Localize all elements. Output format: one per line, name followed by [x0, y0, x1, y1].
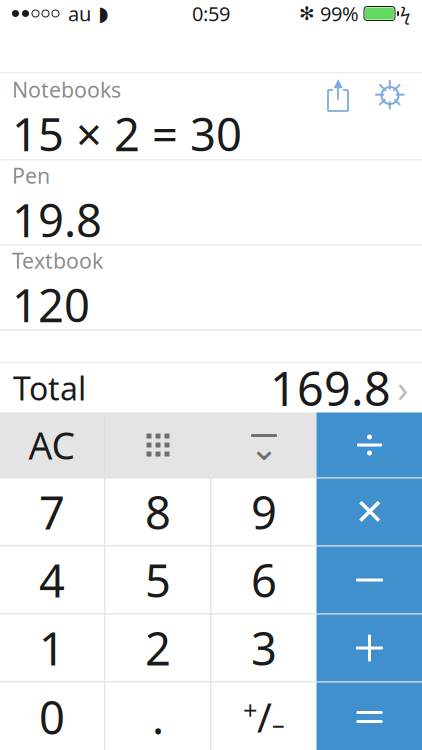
button[interactable]: Share [316, 73, 360, 117]
staticText: Total [13, 367, 86, 409]
staticText: ϟ [400, 1, 410, 26]
staticText: 2 [145, 618, 171, 678]
button[interactable]: Total [0, 363, 422, 412]
button[interactable]: Multiply [316, 478, 422, 545]
staticText: 1 [39, 618, 65, 678]
button[interactable]: Equals [316, 682, 422, 750]
staticText: 4 [39, 550, 65, 610]
staticText: 9 [251, 482, 277, 542]
button[interactable]: AC [0, 412, 104, 477]
staticText: + [243, 693, 257, 727]
button[interactable]: Textbook [0, 245, 422, 329]
staticText: ▲ [333, 76, 342, 89]
button[interactable]: 7 [0, 478, 104, 545]
button[interactable]: Plus minus [211, 682, 316, 750]
staticText: ✻ [299, 3, 315, 24]
button[interactable]: Notebooks [0, 73, 422, 159]
button[interactable]: 8 [105, 478, 210, 545]
staticText: 7 [39, 482, 65, 542]
staticText: 169.8 [270, 357, 391, 419]
button[interactable]: Subtract [316, 546, 422, 613]
staticText: – [272, 707, 285, 741]
staticText: 6 [251, 550, 277, 610]
staticText: . [152, 687, 164, 747]
button[interactable]: 1 [0, 614, 104, 681]
staticText: 0 [39, 687, 65, 747]
button[interactable]: 4 [0, 546, 104, 613]
staticText: 5 [145, 550, 171, 610]
button[interactable]: 3 [211, 614, 316, 681]
button[interactable]: Hide keyboard [211, 412, 316, 477]
button[interactable]: Keypad layout [105, 412, 210, 477]
button[interactable]: Divide [316, 412, 422, 477]
staticText: 120 [12, 275, 90, 335]
staticText: Notebooks [12, 75, 121, 103]
staticText: 8 [145, 482, 171, 542]
staticText: 99% [320, 0, 359, 27]
staticText: ✕ [354, 492, 384, 532]
staticText: / [257, 690, 272, 743]
staticText: 0:59 [192, 0, 230, 27]
button[interactable]: 9 [211, 478, 316, 545]
staticText: Pen [12, 161, 50, 189]
button[interactable]: Pen [0, 160, 422, 244]
button[interactable]: Settings [368, 73, 412, 117]
staticText: AC [28, 420, 75, 470]
staticText: ◗ [98, 2, 109, 25]
button[interactable]: Add [316, 614, 422, 681]
staticText: 15 × 2 = 30 [12, 104, 242, 164]
staticText: Textbook [12, 246, 103, 274]
button[interactable]: 6 [211, 546, 316, 613]
staticText: ⌄ [249, 428, 278, 468]
button[interactable]: . [105, 682, 210, 750]
staticText: 3 [251, 618, 277, 678]
button[interactable]: 2 [105, 614, 210, 681]
staticText: au [68, 0, 91, 27]
button[interactable]: 0 [0, 682, 104, 750]
staticText: 19.8 [12, 190, 102, 250]
staticText: ✳ [373, 73, 407, 118]
staticText: › [397, 363, 409, 413]
button[interactable]: 5 [105, 546, 210, 613]
